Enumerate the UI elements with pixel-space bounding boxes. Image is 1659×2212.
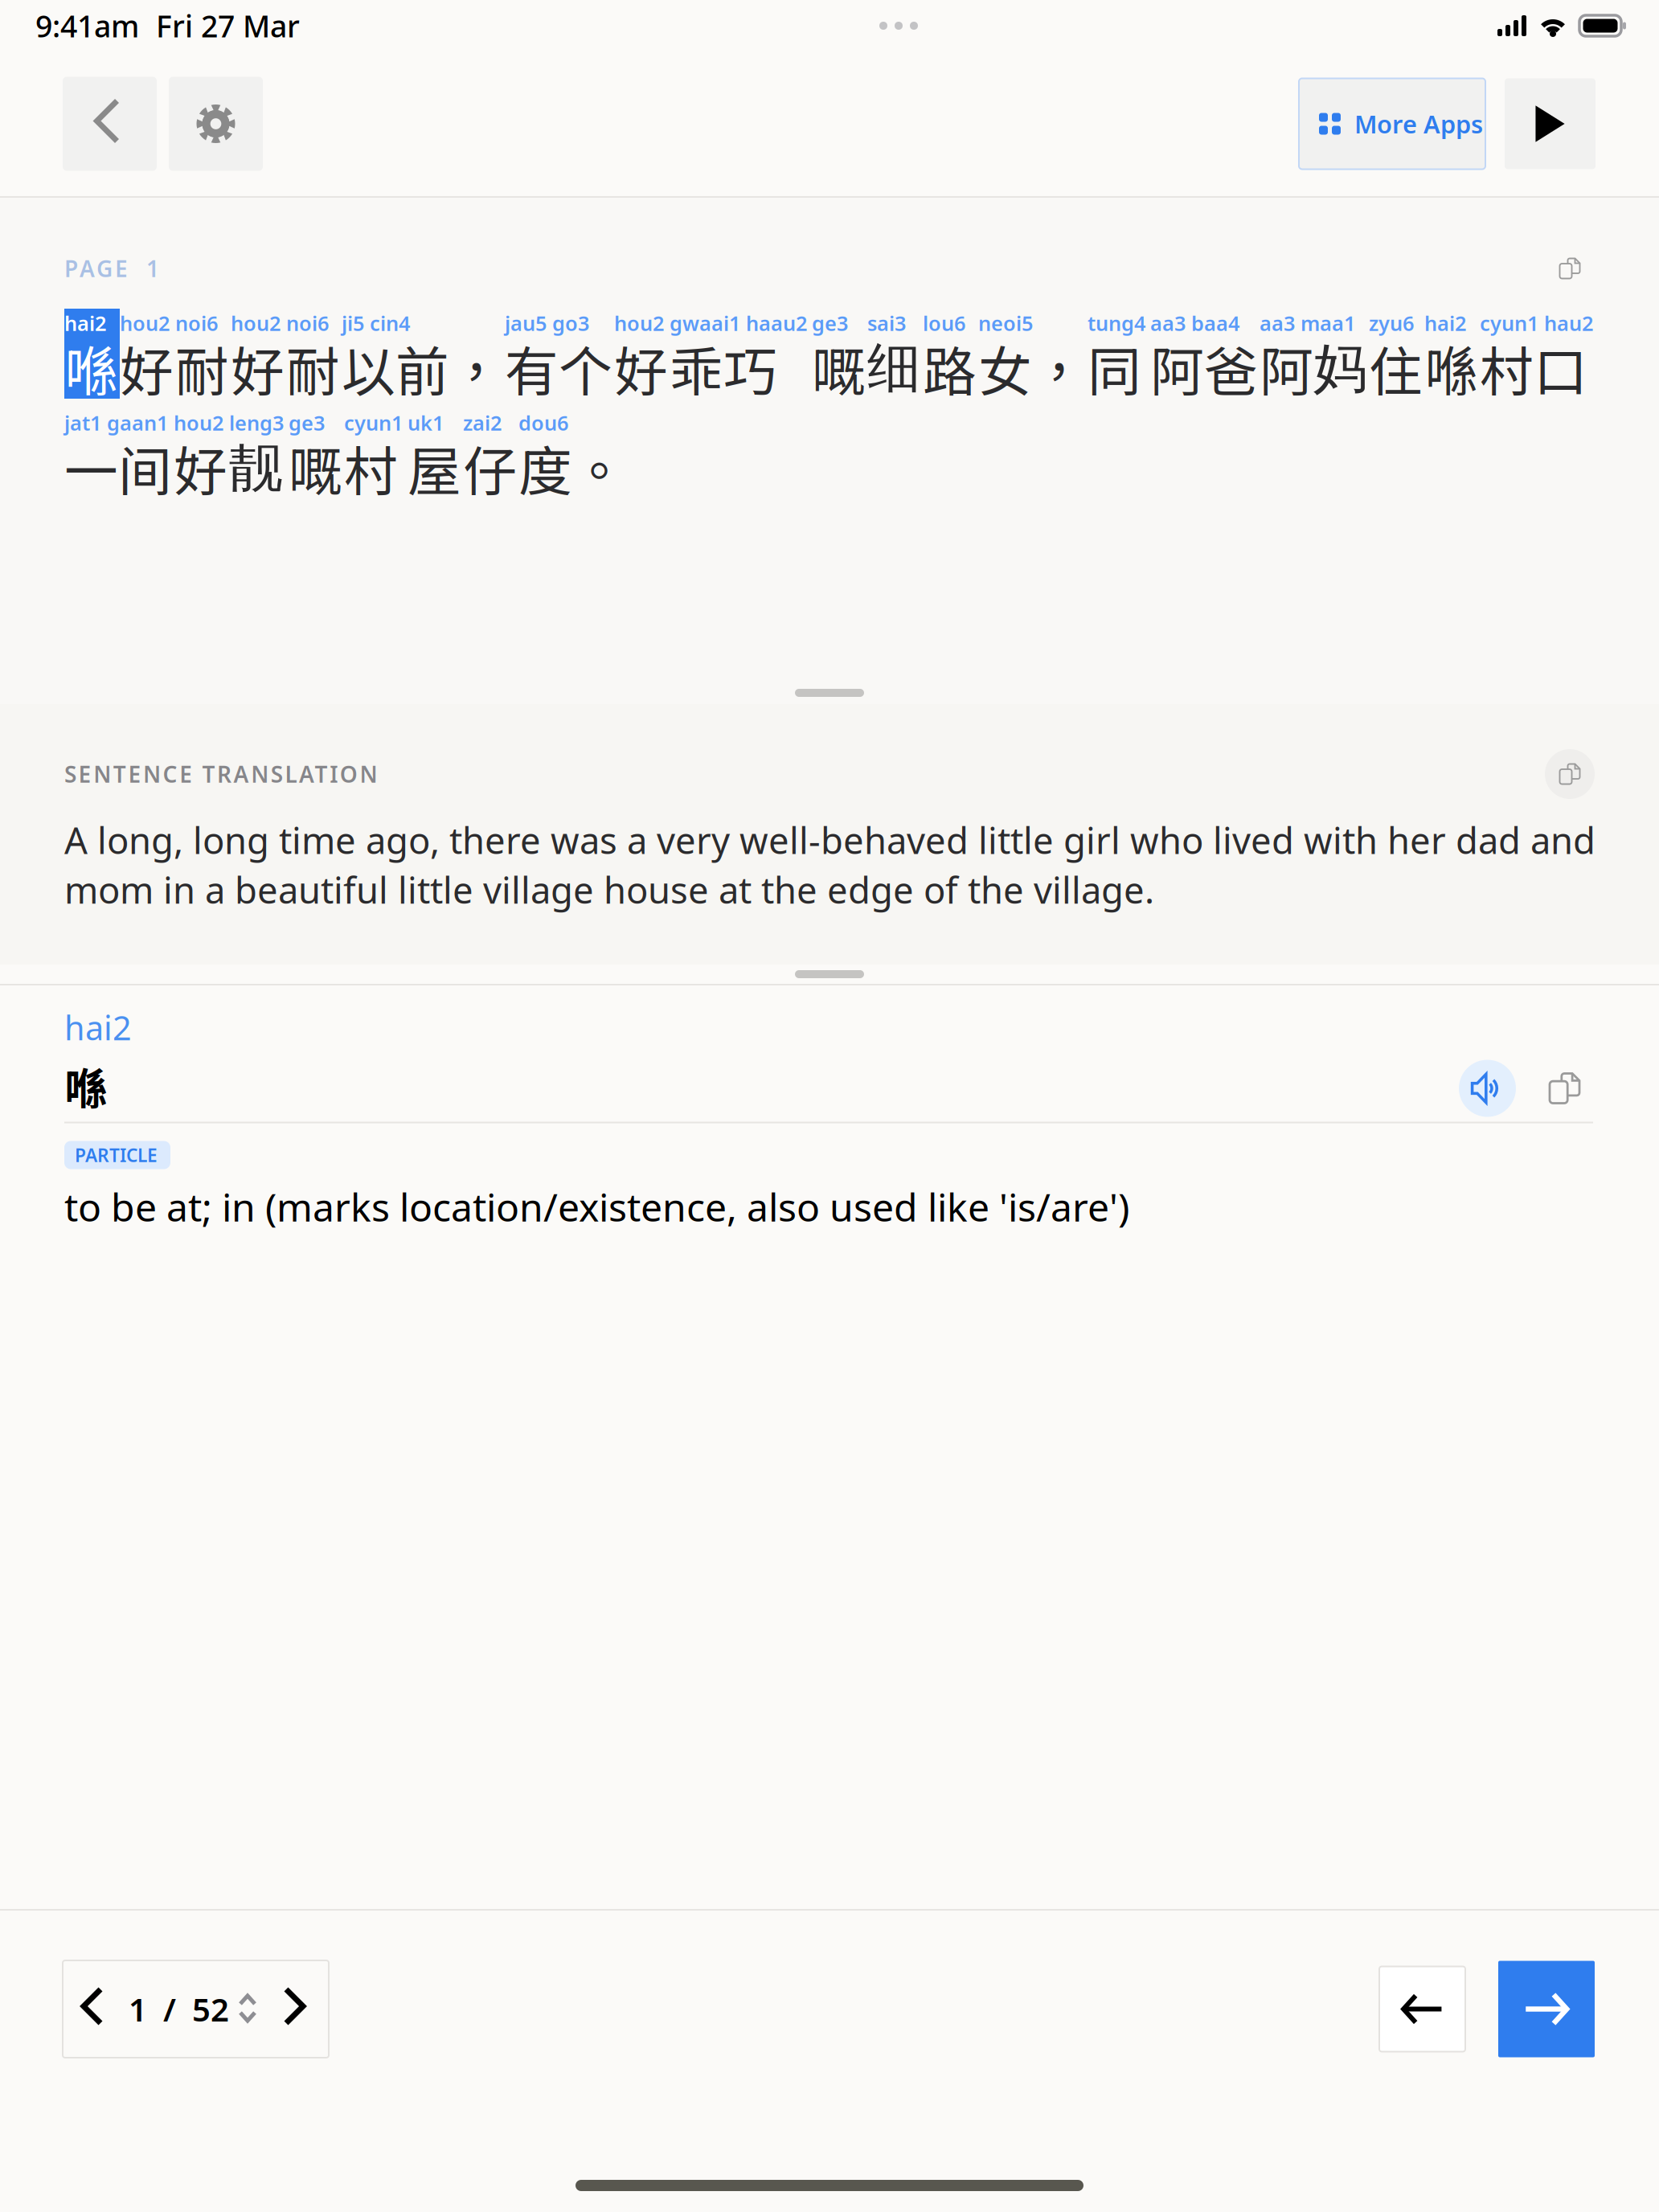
staticText: PAGE 1 (64, 253, 159, 284)
button[interactable]: Previous page (63, 1960, 127, 2058)
staticText: 女， (978, 329, 1086, 407)
staticText: jat1 gaan1 (64, 409, 168, 437)
staticText: 路 (923, 329, 977, 407)
staticText: 屋 (408, 429, 461, 507)
staticText: noi6 (175, 309, 218, 337)
staticText: 靓 (229, 434, 283, 502)
staticText: aa3 baa4 (1150, 309, 1239, 337)
button[interactable]: More Apps (1299, 78, 1485, 169)
staticText: 嘅 (812, 329, 866, 407)
button[interactable]: Next page (266, 1960, 329, 2058)
button[interactable]: Copy translation (1545, 749, 1595, 799)
staticText: hai2 (64, 309, 106, 337)
staticText: 9:41am (35, 5, 139, 46)
staticText: 耐 (286, 329, 340, 407)
button[interactable]: Previous sentence (1379, 1966, 1465, 2052)
staticText: 喺 (1424, 329, 1478, 407)
staticText: SENTENCE TRANSLATION (64, 759, 377, 789)
staticText: hai2 (1424, 309, 1466, 337)
staticText: 1 / 52 (129, 1987, 229, 2031)
staticText: 一间 (64, 429, 172, 507)
staticText: dou6 (518, 409, 568, 437)
staticText: noi6 (286, 309, 329, 337)
staticText: 阿妈 (1260, 329, 1367, 407)
staticText: ge3 (812, 309, 848, 337)
staticText: uk1 (408, 409, 444, 437)
staticText: leng3 (229, 409, 284, 437)
button[interactable]: Next sentence (1498, 1961, 1595, 2057)
staticText: 度。 (518, 429, 626, 507)
staticText: zyu6 (1369, 309, 1414, 337)
staticText: 村口 (1480, 329, 1587, 407)
staticText: to be at; in (marks location/existence, … (64, 1180, 1129, 1233)
staticText: tung4 (1088, 309, 1145, 337)
button[interactable]: Copy sentence (1550, 249, 1589, 288)
button[interactable]: Settings (169, 77, 263, 171)
staticText: jau5 go3 (505, 309, 589, 337)
staticText: 好 (614, 329, 668, 407)
staticText: 好 (231, 329, 285, 407)
button[interactable]: Play (1505, 78, 1596, 169)
staticText: 耐 (175, 329, 229, 407)
staticText: lou6 (923, 309, 965, 337)
staticText: zai2 (463, 409, 502, 437)
staticText: 以前， (342, 329, 503, 407)
staticText: cyun1 (344, 409, 403, 437)
staticText: A long, long time ago, there was a very … (64, 815, 1596, 914)
staticText: More Apps (1354, 107, 1483, 141)
staticText: ge3 (289, 409, 325, 437)
staticText: hou2 (120, 309, 170, 337)
staticText: 住 (1369, 329, 1423, 407)
staticText: hou2 (231, 309, 281, 337)
button[interactable]: Back (63, 77, 157, 171)
staticText: cyun1 hau2 (1480, 309, 1593, 337)
staticText: aa3 maa1 (1260, 309, 1355, 337)
staticText: 喺 (64, 329, 118, 407)
staticText: Fri 27 Mar (156, 5, 300, 46)
button[interactable]: Play pronunciation (1459, 1060, 1516, 1117)
button[interactable]: Choose page (231, 1960, 266, 2058)
staticText: gwaai1 haau2 (670, 309, 807, 337)
staticText: 好 (120, 329, 174, 407)
staticText: sai3 (867, 309, 906, 337)
staticText: 同 (1088, 329, 1141, 407)
staticText: 嘅 (289, 429, 342, 507)
staticText: PARTICLE (75, 1143, 158, 1167)
staticText: 阿爸 (1150, 329, 1258, 407)
staticText: 乖巧 (670, 329, 777, 407)
staticText: 有个 (505, 329, 612, 407)
staticText: hou2 (174, 409, 223, 437)
staticText: 喺 (64, 1055, 107, 1117)
staticText: 细 (867, 334, 921, 402)
staticText: hai2 (64, 1005, 132, 1050)
staticText: 仔 (463, 429, 517, 507)
staticText: hou2 (614, 309, 664, 337)
staticText: 村 (344, 429, 398, 507)
staticText: neoi5 (978, 309, 1033, 337)
staticText: 好 (174, 429, 227, 507)
button[interactable]: Copy word (1536, 1060, 1593, 1117)
staticText: ji5 cin4 (342, 309, 410, 337)
